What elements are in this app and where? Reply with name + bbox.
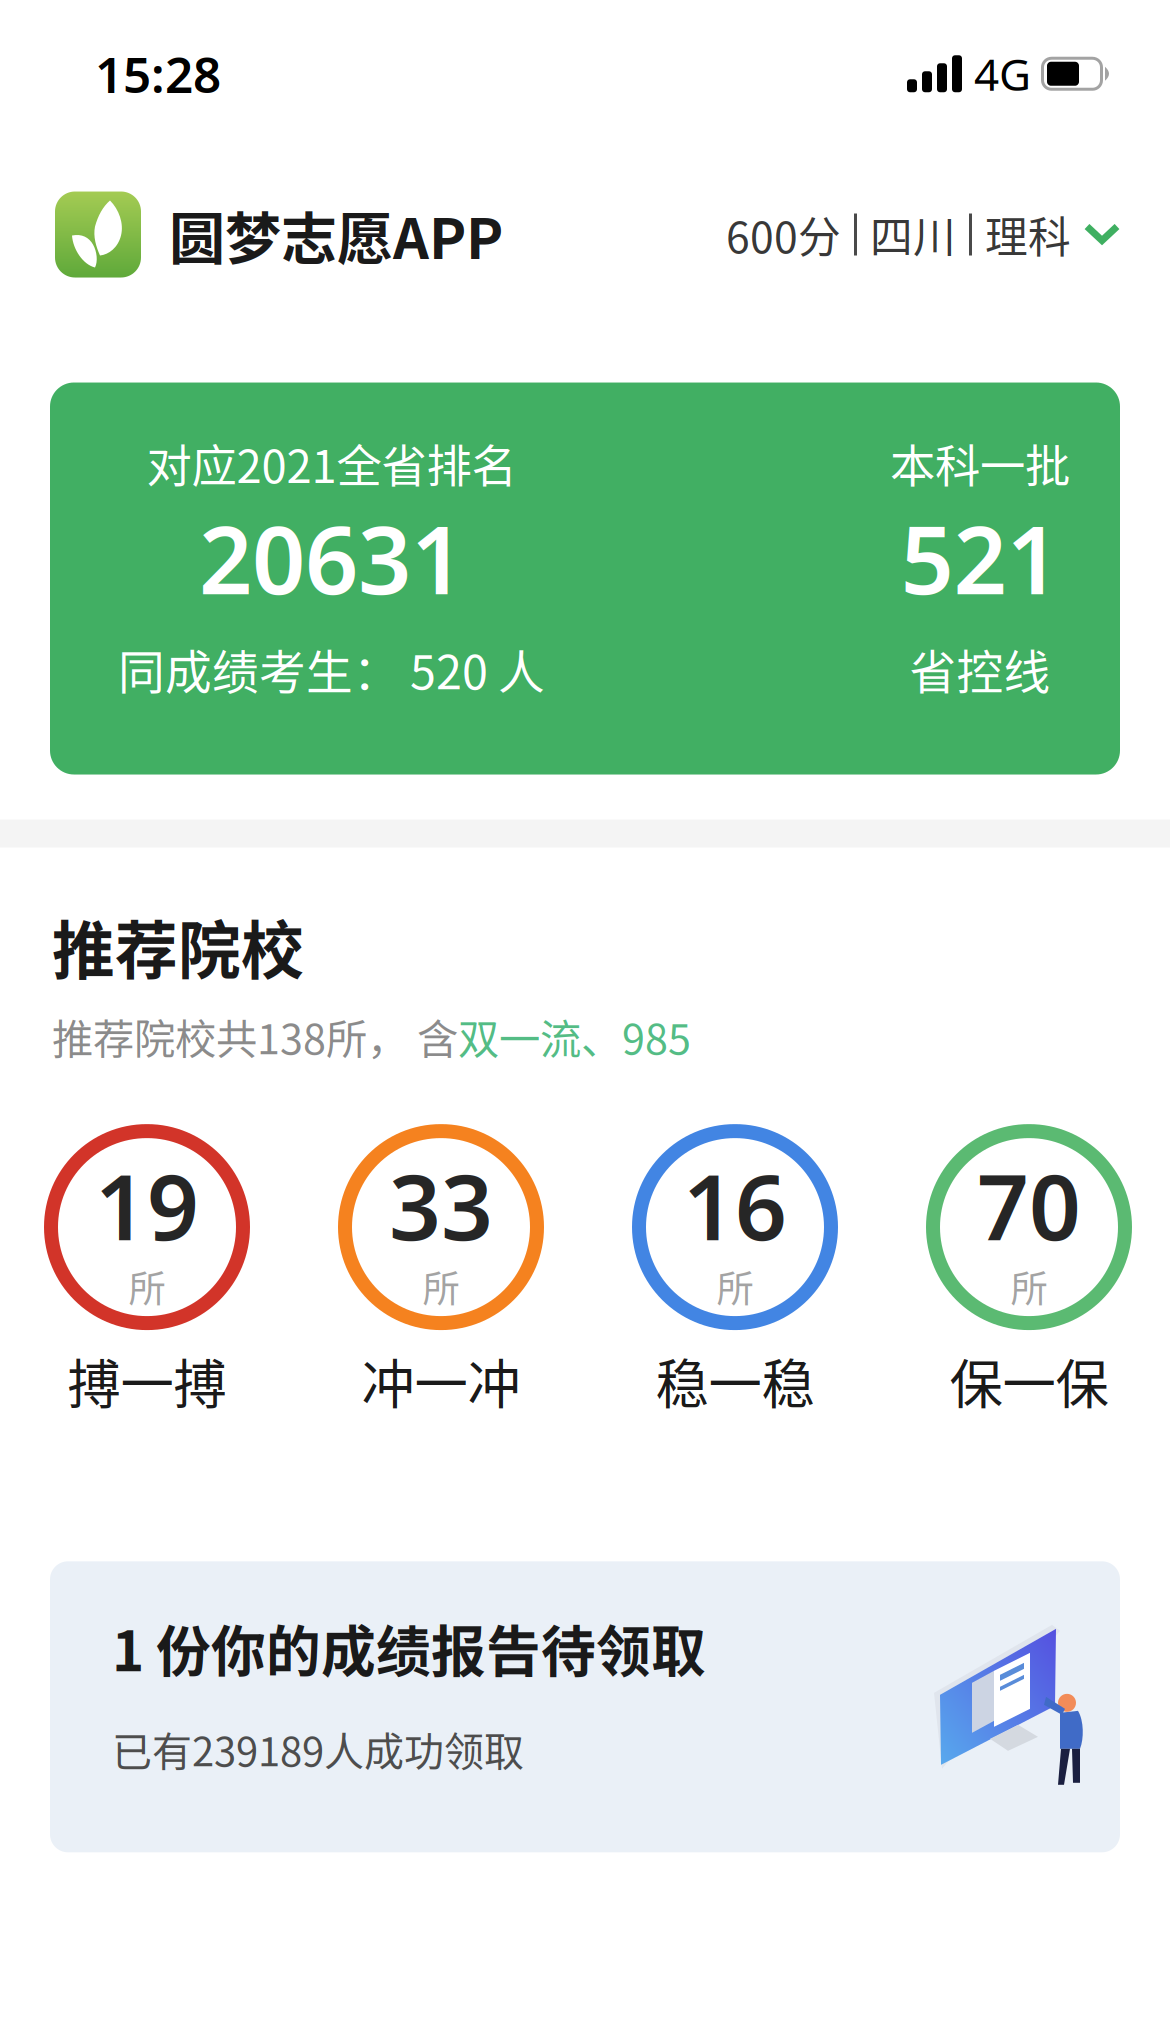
staticText: 20631 bbox=[199, 496, 464, 620]
staticText: 521 bbox=[900, 496, 1059, 620]
staticText: 19 bbox=[95, 1145, 199, 1265]
staticText: 四川 bbox=[870, 204, 956, 265]
staticText: 15:28 bbox=[95, 41, 221, 106]
staticText: 双一流、985 bbox=[458, 1006, 691, 1066]
button[interactable]: 600分 bbox=[726, 204, 1119, 265]
staticText: 搏一搏 bbox=[67, 1342, 226, 1419]
staticText: 理科 bbox=[985, 204, 1071, 265]
button[interactable]: 16 bbox=[632, 1124, 838, 1419]
staticText: 省控线 bbox=[909, 635, 1050, 703]
staticText: 冲一冲 bbox=[361, 1342, 520, 1419]
staticText: 稳一稳 bbox=[655, 1342, 814, 1419]
staticText: 33 bbox=[389, 1145, 493, 1265]
button[interactable]: 33 bbox=[338, 1124, 544, 1419]
staticText: 600分 bbox=[726, 204, 841, 265]
staticText: 所 bbox=[1010, 1259, 1047, 1313]
staticText: 对应2021全省排名 bbox=[146, 430, 516, 496]
button[interactable]: 70 bbox=[926, 1124, 1132, 1419]
staticText: 所 bbox=[422, 1259, 459, 1313]
staticText: 保一保 bbox=[949, 1342, 1108, 1419]
staticText: 所 bbox=[128, 1259, 165, 1313]
staticText: 本科一批 bbox=[890, 430, 1070, 496]
staticText: 1 份你的成绩报告待领取 bbox=[112, 1608, 706, 1687]
staticText: 圆梦志愿APP bbox=[169, 194, 503, 275]
staticText: 推荐院校 bbox=[52, 900, 304, 991]
button[interactable]: 19 bbox=[44, 1124, 250, 1419]
staticText: 16 bbox=[683, 1145, 787, 1265]
staticText: 70 bbox=[977, 1145, 1081, 1265]
staticText: 同成绩考生： 520 人 bbox=[118, 635, 545, 703]
staticText: 推荐院校共138所， 含 bbox=[52, 1006, 458, 1066]
staticText: 4G bbox=[974, 44, 1031, 103]
staticText: 所 bbox=[716, 1259, 753, 1313]
staticText: 已有239189人成功领取 bbox=[112, 1720, 524, 1778]
button[interactable]: 1 份你的成绩报告待领取 bbox=[50, 1561, 1120, 1852]
